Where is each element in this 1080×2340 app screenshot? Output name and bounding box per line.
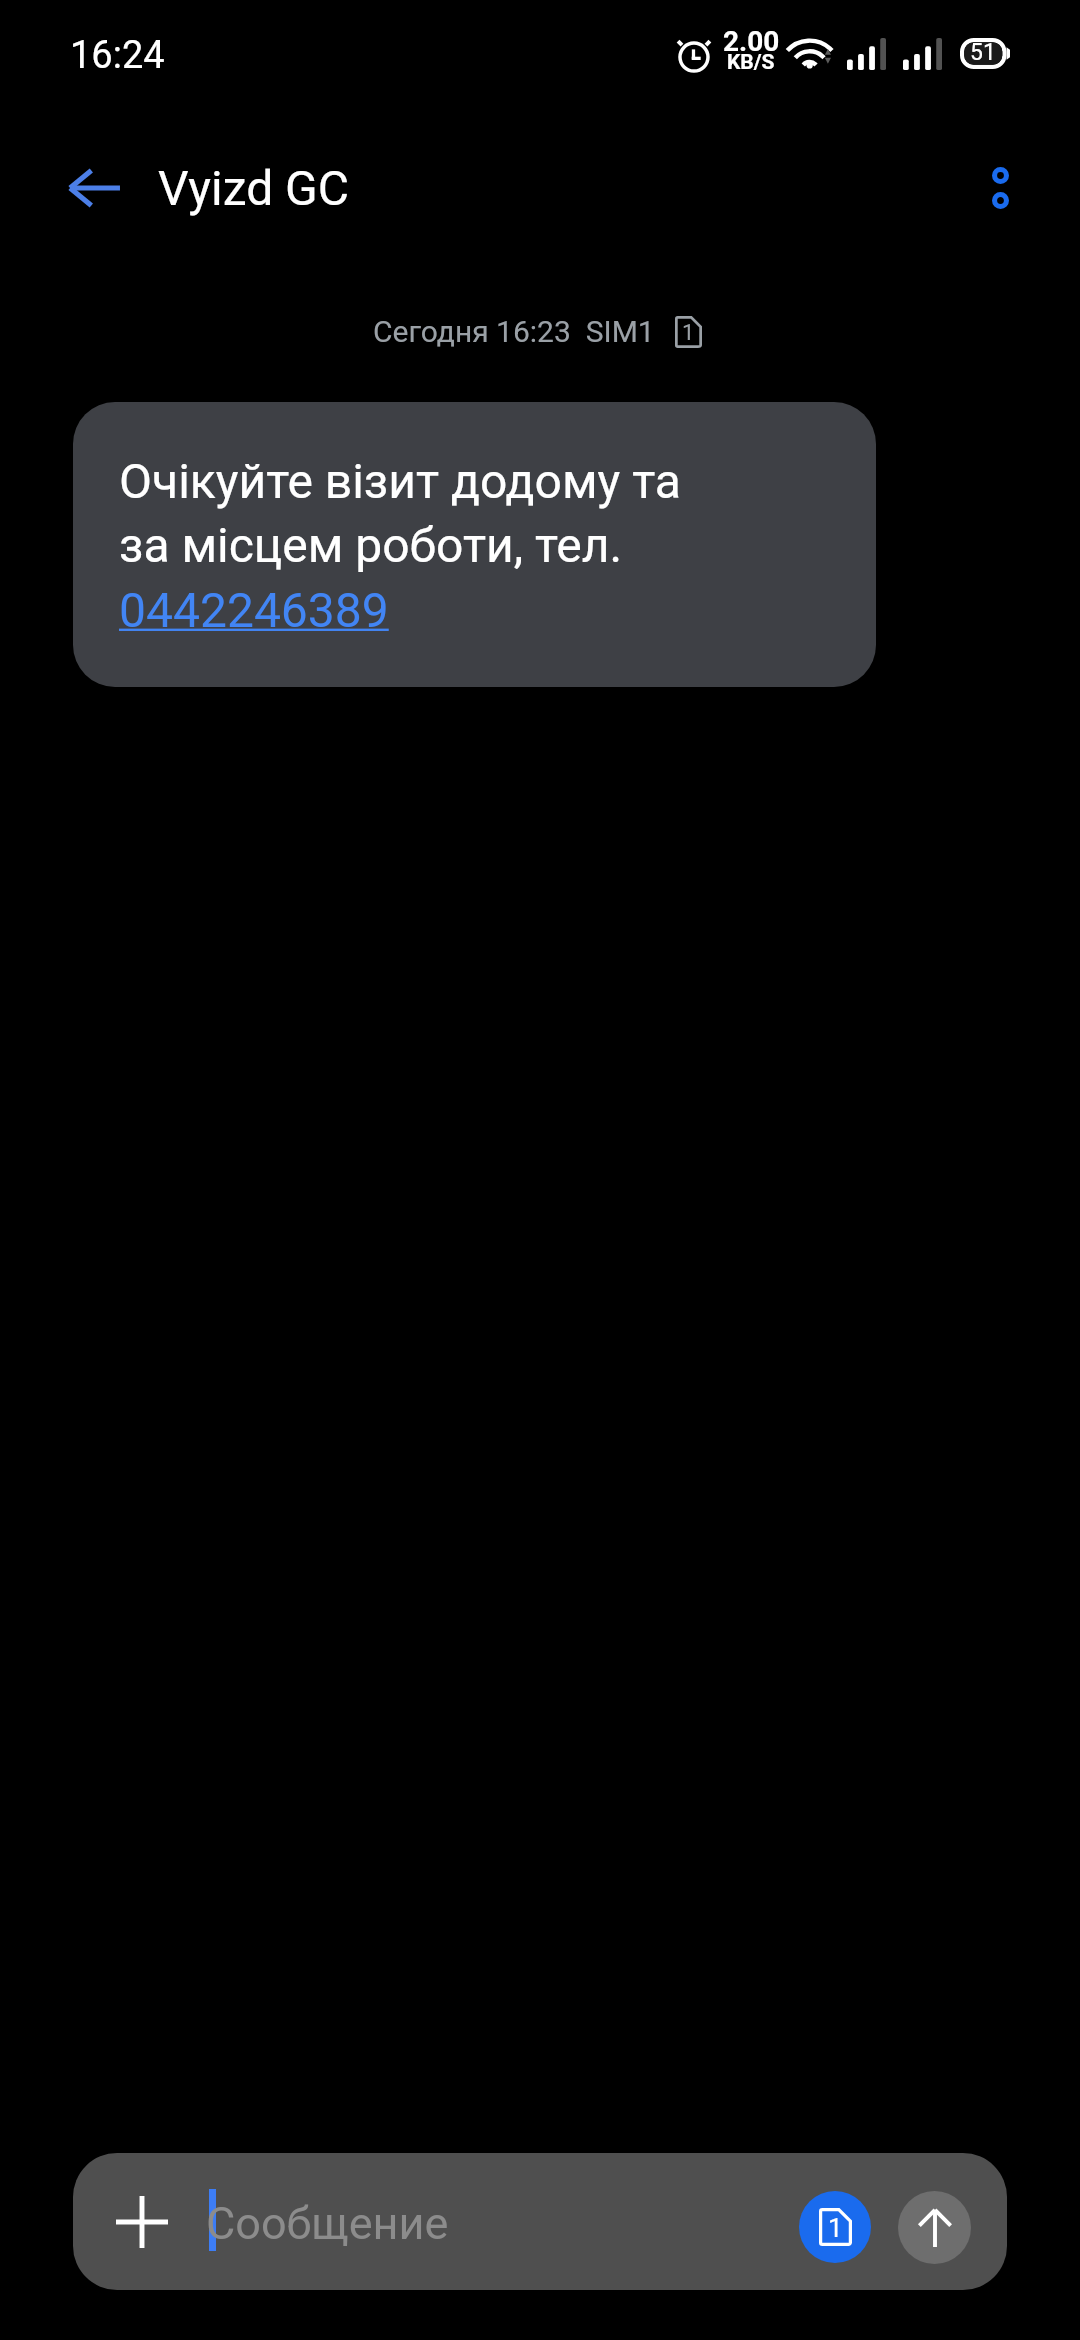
staticText: 1 (682, 320, 695, 346)
staticText: за місцем роботи, тел. (119, 517, 623, 573)
staticText: Сообщение (206, 2197, 449, 2250)
button[interactable]: Add attachment (93, 2173, 191, 2271)
staticText: Сегодня 16:23 SIM1 (373, 314, 655, 349)
staticText: 16:24 (70, 33, 165, 78)
staticText: 1 (828, 2213, 843, 2243)
button[interactable]: Сообщение (203, 2153, 773, 2290)
staticText: KB/S (727, 50, 775, 75)
button[interactable]: Back (44, 138, 144, 238)
staticText: 51 (970, 39, 996, 66)
button[interactable]: 0442246389 (119, 582, 389, 638)
staticText: 2.00 (723, 25, 780, 58)
staticText: Vyizd GC (158, 160, 350, 216)
button[interactable]: More options (950, 138, 1050, 238)
button[interactable]: Очікуйте візит додому та (73, 402, 876, 687)
staticText: Очікуйте візит додому та (119, 453, 681, 509)
button[interactable]: SIM 1 (799, 2191, 871, 2263)
button[interactable]: Send (898, 2191, 971, 2264)
